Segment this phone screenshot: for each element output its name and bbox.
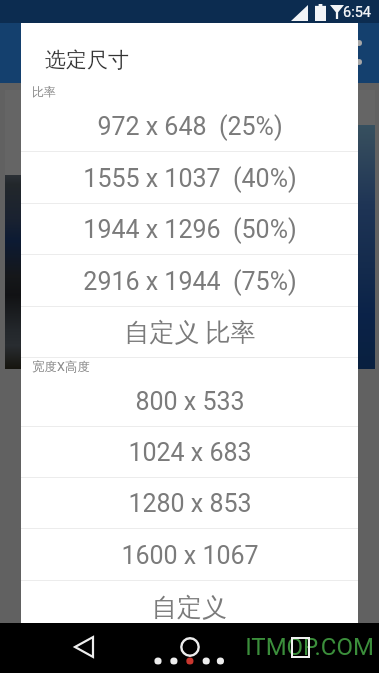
- button[interactable]: 972 x 648 (25%): [21, 100, 358, 152]
- staticText: 自定义 比率: [124, 317, 256, 348]
- button[interactable]: 1555 x 1037 (40%): [21, 152, 358, 204]
- staticText: 选定尺寸: [45, 47, 129, 73]
- button[interactable]: 800 x 533: [21, 375, 358, 427]
- button[interactable]: Back: [64, 627, 104, 667]
- button[interactable]: 1280 x 853: [21, 478, 358, 529]
- button[interactable]: 1024 x 683: [21, 426, 358, 478]
- staticText: 1600 x 1067: [121, 541, 259, 570]
- staticText: 2916 x 1944 (75%): [83, 267, 297, 296]
- button[interactable]: 2916 x 1944 (75%): [21, 255, 358, 307]
- staticText: ITMOP.COM: [245, 633, 374, 661]
- staticText: 1280 x 853: [128, 489, 252, 518]
- staticText: 自定义: [152, 592, 227, 623]
- button[interactable]: Home: [170, 627, 210, 667]
- staticText: 比率: [32, 84, 56, 99]
- staticText: 宽度X高度: [32, 359, 90, 375]
- staticText: 1944 x 1296 (50%): [83, 215, 297, 244]
- button[interactable]: 自定义 比率: [21, 306, 358, 358]
- staticText: 1555 x 1037 (40%): [83, 164, 297, 193]
- button[interactable]: 1600 x 1067: [21, 529, 358, 581]
- staticText: 800 x 533: [135, 387, 245, 416]
- staticText: 1024 x 683: [128, 438, 252, 467]
- staticText: 6:54: [343, 4, 371, 21]
- button[interactable]: 1944 x 1296 (50%): [21, 203, 358, 255]
- staticText: 972 x 648 (25%): [97, 112, 283, 141]
- button[interactable]: 自定义: [21, 581, 358, 633]
